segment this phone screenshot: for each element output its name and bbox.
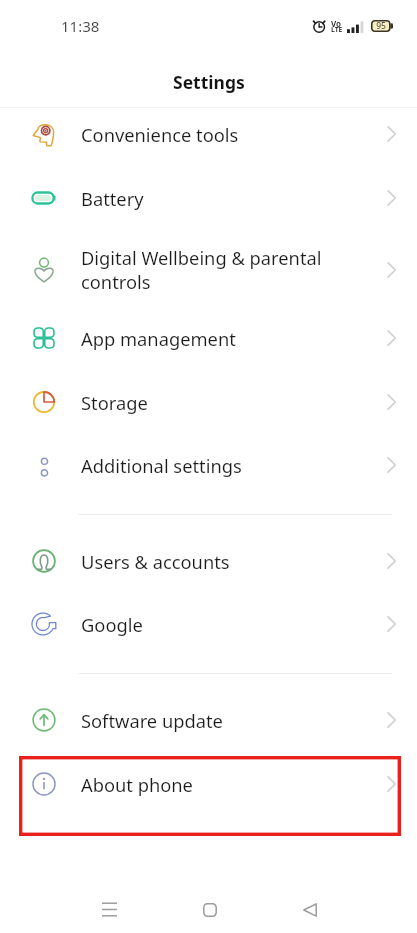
button[interactable]: Users & accounts <box>0 529 417 593</box>
staticText: About phone <box>81 772 373 797</box>
staticText: Google <box>81 612 373 637</box>
staticText: Battery <box>81 186 373 211</box>
staticText: 11:38 <box>61 16 100 36</box>
staticText: Vo <box>331 18 342 29</box>
staticText: LTE <box>331 25 343 34</box>
button[interactable]: Software update <box>0 688 417 752</box>
button[interactable]: About phone <box>0 752 417 816</box>
staticText: App management <box>81 326 373 351</box>
button[interactable]: Storage <box>0 370 417 434</box>
button[interactable]: App management <box>0 306 417 370</box>
button[interactable]: Convenience tools <box>0 102 417 166</box>
staticText: Additional settings <box>81 453 373 478</box>
staticText: Settings <box>173 70 245 94</box>
button[interactable]: Back <box>271 882 349 933</box>
staticText: Software update <box>81 708 373 733</box>
staticText: Convenience tools <box>81 122 373 147</box>
button[interactable]: Additional settings <box>0 433 417 497</box>
button[interactable]: Digital Wellbeing & parental controls <box>0 231 417 309</box>
button[interactable]: Google <box>0 592 417 656</box>
button[interactable]: Battery <box>0 166 417 230</box>
staticText: Users & accounts <box>81 549 373 574</box>
staticText: Digital Wellbeing & parental controls <box>81 245 373 295</box>
staticText: 95 <box>376 20 386 32</box>
button[interactable]: Home <box>170 882 248 933</box>
staticText: Storage <box>81 390 373 415</box>
button[interactable]: Recent apps <box>70 882 148 933</box>
